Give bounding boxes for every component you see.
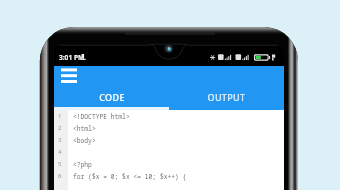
button[interactable]: Open navigation menu bbox=[58, 67, 79, 88]
staticText: <body> bbox=[73, 136, 96, 145]
staticText: 3 bbox=[58, 136, 62, 144]
staticText: 5 bbox=[58, 160, 62, 168]
button[interactable]: OUTPUT bbox=[169, 88, 284, 110]
staticText: <html> bbox=[73, 124, 96, 133]
staticText: 1 bbox=[58, 112, 62, 120]
staticText: 2 bbox=[58, 124, 62, 132]
staticText: <?php bbox=[73, 160, 92, 169]
staticText: 4 bbox=[58, 148, 62, 156]
staticText: 6 bbox=[58, 172, 62, 180]
staticText: 3:01 PM bbox=[59, 53, 85, 62]
staticText: CODE bbox=[99, 91, 125, 103]
staticText: OUTPUT bbox=[207, 91, 246, 103]
button[interactable]: CODE bbox=[54, 88, 169, 110]
staticText: <!DOCTYPE html> bbox=[73, 112, 130, 121]
staticText: for ($x = 0; $x <= 10; $x++) { bbox=[73, 172, 187, 181]
